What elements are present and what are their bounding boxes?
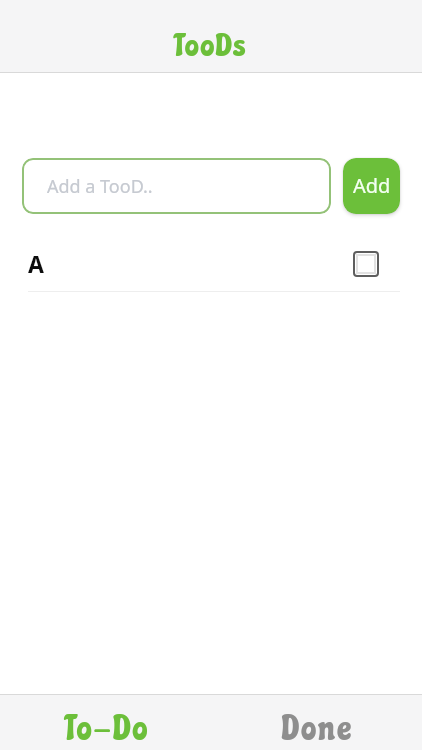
button[interactable]: A: [28, 236, 400, 291]
staticText: TooDs: [175, 28, 248, 64]
staticText: Add a TooD..: [47, 174, 153, 199]
button[interactable]: Toggle done: [356, 254, 376, 274]
staticText: Add: [353, 172, 391, 199]
staticText: A: [28, 248, 44, 279]
button[interactable]: To-Do: [0, 694, 211, 750]
staticText: Done: [282, 709, 354, 749]
button[interactable]: Add a TooD..: [22, 158, 331, 214]
button[interactable]: Done: [211, 694, 422, 750]
staticText: To-Do: [66, 709, 149, 749]
button[interactable]: Add: [343, 158, 400, 214]
